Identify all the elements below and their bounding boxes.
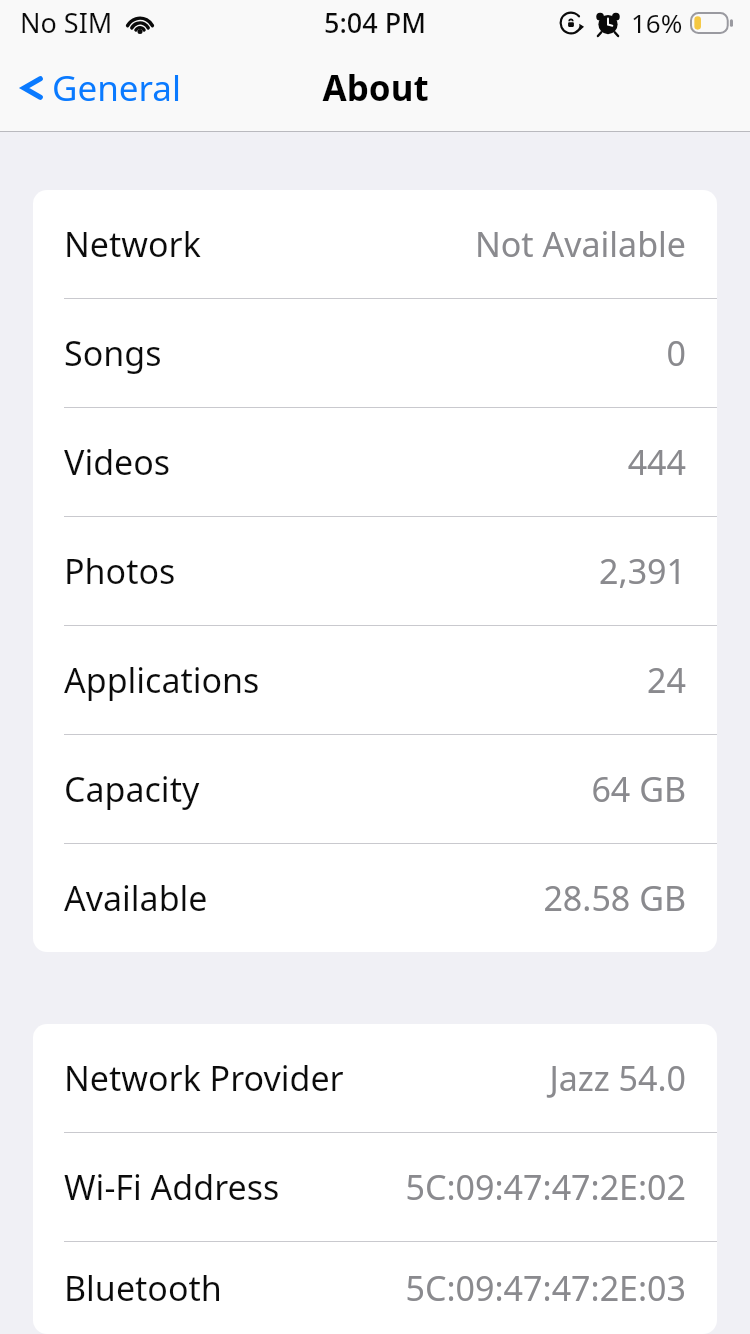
staticText: 64 GB: [591, 766, 686, 812]
staticText: 5C:09:47:47:2E:03: [405, 1265, 686, 1311]
staticText: Photos: [64, 548, 176, 594]
button[interactable]: Bluetooth: [33, 1242, 717, 1334]
button[interactable]: Network: [33, 190, 717, 298]
staticText: General: [52, 64, 182, 112]
staticText: Songs: [64, 330, 162, 376]
other: Back: [20, 66, 46, 110]
button[interactable]: Applications: [33, 626, 717, 734]
staticText: Videos: [64, 439, 171, 485]
staticText: Available: [64, 875, 208, 921]
staticText: 5C:09:47:47:2E:02: [405, 1164, 686, 1210]
staticText: 24: [647, 657, 686, 703]
staticText: 444: [627, 439, 686, 485]
button[interactable]: Capacity: [33, 735, 717, 843]
button[interactable]: Wi-Fi Address: [33, 1133, 717, 1241]
staticText: Network Provider: [64, 1055, 344, 1101]
button[interactable]: Back: [14, 56, 188, 120]
staticText: 2,391: [599, 548, 686, 594]
button[interactable]: Available: [33, 844, 717, 952]
staticText: Jazz 54.0: [549, 1055, 686, 1101]
staticText: Not Available: [474, 221, 686, 267]
staticText: About: [322, 64, 429, 112]
staticText: 5:04 PM: [324, 4, 426, 41]
button[interactable]: Songs: [33, 299, 717, 407]
staticText: Network: [64, 221, 201, 267]
staticText: Capacity: [64, 766, 200, 812]
button[interactable]: Photos: [33, 517, 717, 625]
staticText: 0: [666, 330, 686, 376]
staticText: 16%: [631, 5, 683, 40]
staticText: Wi-Fi Address: [64, 1164, 280, 1210]
staticText: 28.58 GB: [543, 875, 686, 921]
button[interactable]: Videos: [33, 408, 717, 516]
button[interactable]: Network Provider: [33, 1024, 717, 1132]
staticText: Applications: [64, 657, 260, 703]
staticText: Bluetooth: [64, 1265, 222, 1311]
staticText: No SIM: [20, 4, 113, 41]
